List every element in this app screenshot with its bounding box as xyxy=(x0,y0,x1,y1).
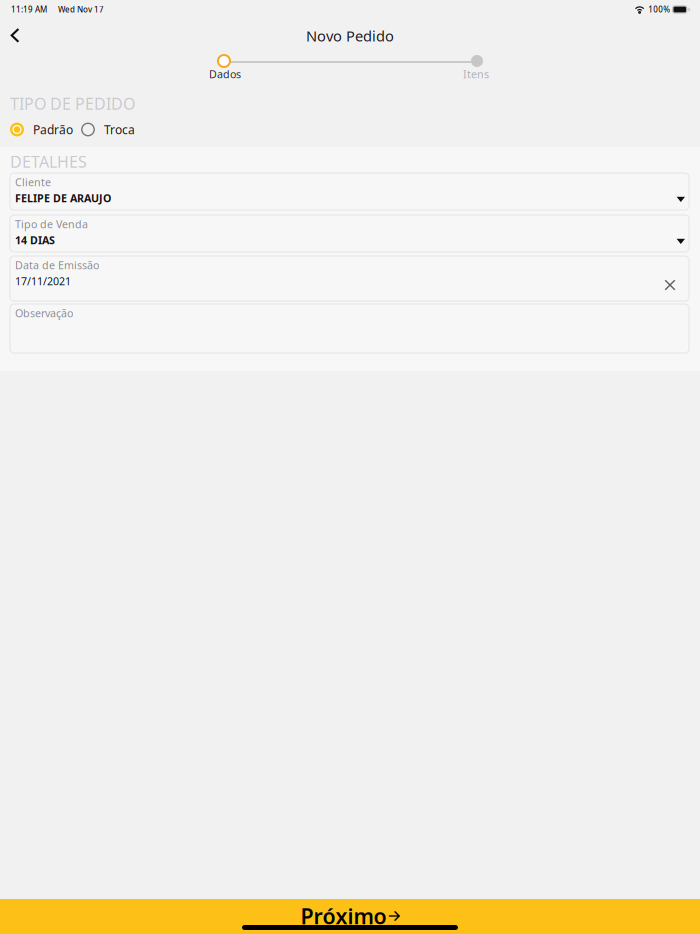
staticText: 100% xyxy=(648,4,670,15)
staticText: Observação xyxy=(15,306,73,320)
button[interactable]: Troca xyxy=(81,122,135,137)
button[interactable]: Tipo de Venda xyxy=(10,215,689,252)
staticText: Data de Emissão xyxy=(15,258,99,272)
staticText: 14 DIAS xyxy=(15,233,55,247)
staticText: 17/11/2021 xyxy=(15,274,71,288)
staticText: Novo Pedido xyxy=(306,26,394,45)
button[interactable]: Padrão xyxy=(10,122,73,137)
staticText: Dados xyxy=(209,67,241,81)
staticText: Wed Nov 17 xyxy=(58,4,104,15)
button[interactable]: Observação xyxy=(10,304,689,353)
button[interactable]: Clear date xyxy=(659,276,681,294)
button[interactable]: Back xyxy=(2,28,28,50)
staticText: Próximo xyxy=(300,902,386,930)
staticText: 11:19 AM xyxy=(11,4,47,15)
staticText: Troca xyxy=(104,121,135,137)
staticText: Padrão xyxy=(33,121,73,137)
button[interactable]: Cliente xyxy=(10,173,689,210)
staticText: Itens xyxy=(463,67,489,81)
staticText: Cliente xyxy=(15,175,51,189)
staticText: FELIPE DE ARAUJO xyxy=(15,191,111,205)
staticText: Tipo de Venda xyxy=(15,217,88,231)
button[interactable]: Data de Emissão xyxy=(10,256,689,301)
staticText: DETALHES xyxy=(10,151,87,172)
staticText: TIPO DE PEDIDO xyxy=(10,93,135,114)
button[interactable]: Próximo xyxy=(0,899,700,934)
